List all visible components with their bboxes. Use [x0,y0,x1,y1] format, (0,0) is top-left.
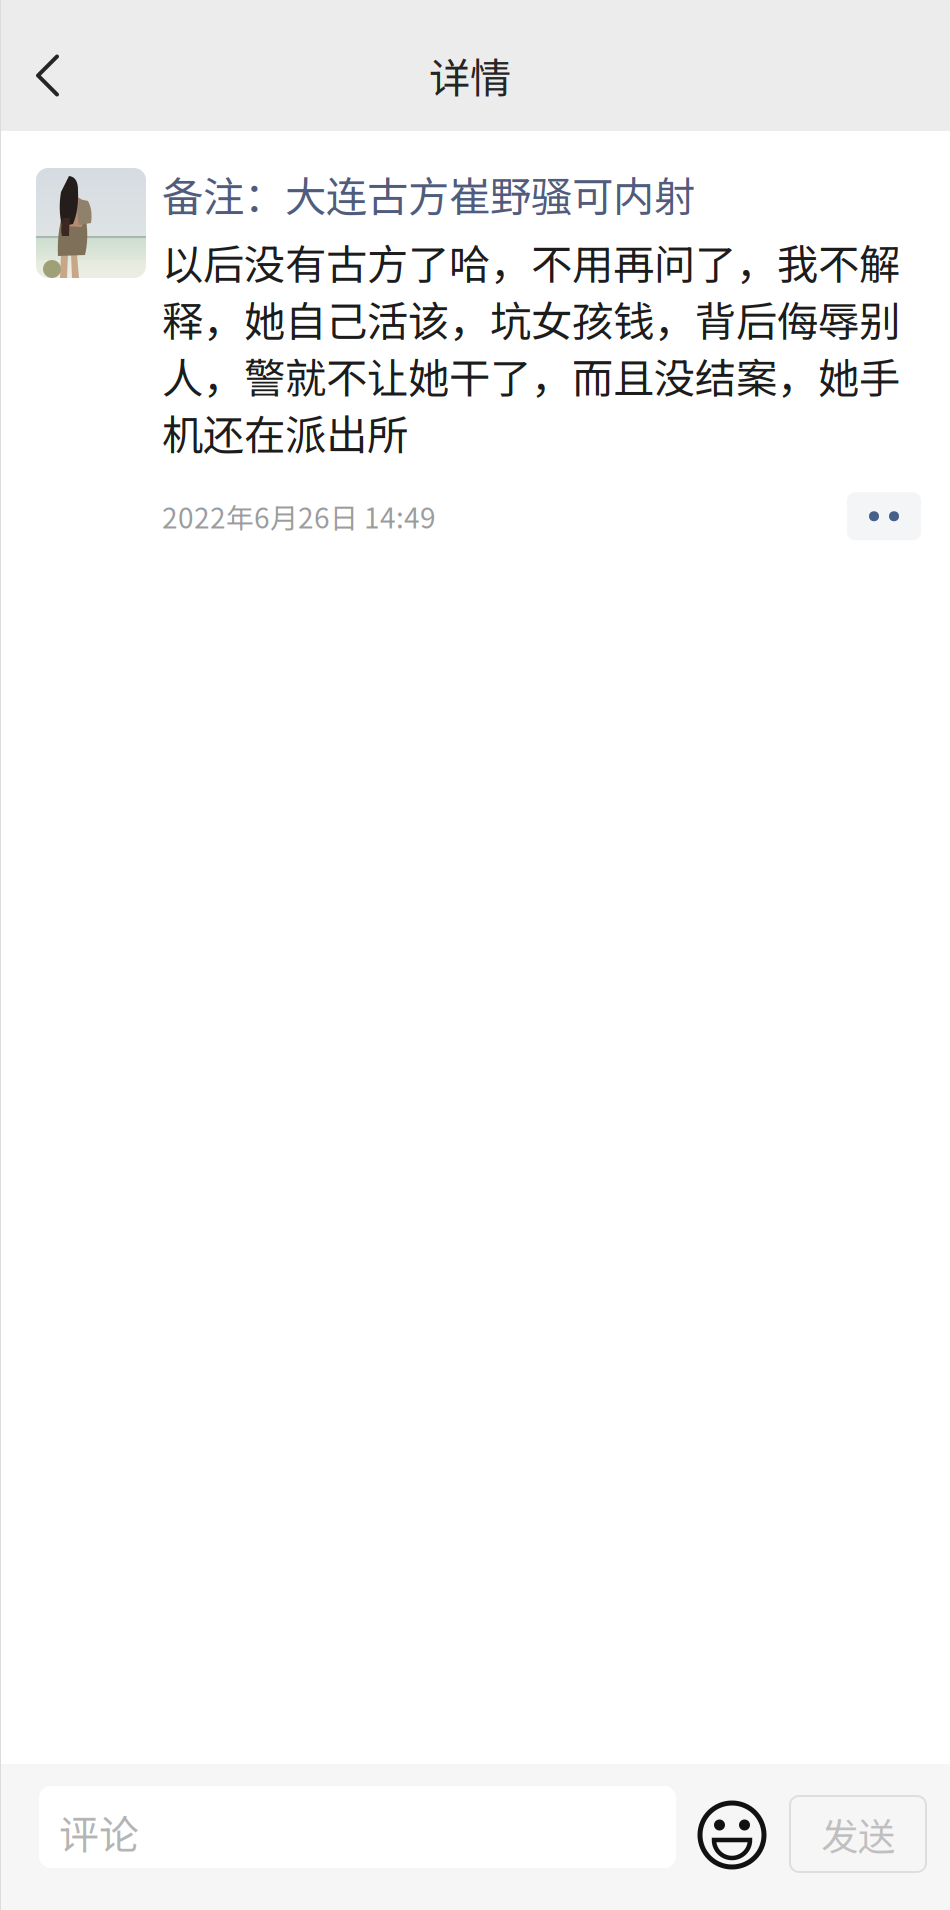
staticText: 2022年6月26日 14:49 [162,496,436,536]
button[interactable]: More options [847,492,921,540]
staticText: 以后没有古方了哈，不用再问了，我不解释，她自己活该，坑女孩钱，背后侮辱别人，警就… [162,232,900,462]
button[interactable]: 发送 [790,1789,926,1865]
staticText: 详情 [429,46,511,105]
button[interactable]: Back [0,0,112,131]
button[interactable]: 评论 [39,1786,676,1868]
staticText: 备注：大连古方崔野骚可内射 [162,164,695,224]
button[interactable]: Emoji keyboard [700,1795,764,1859]
staticText: 发送 [821,1807,895,1861]
staticText: 评论 [59,1803,139,1861]
